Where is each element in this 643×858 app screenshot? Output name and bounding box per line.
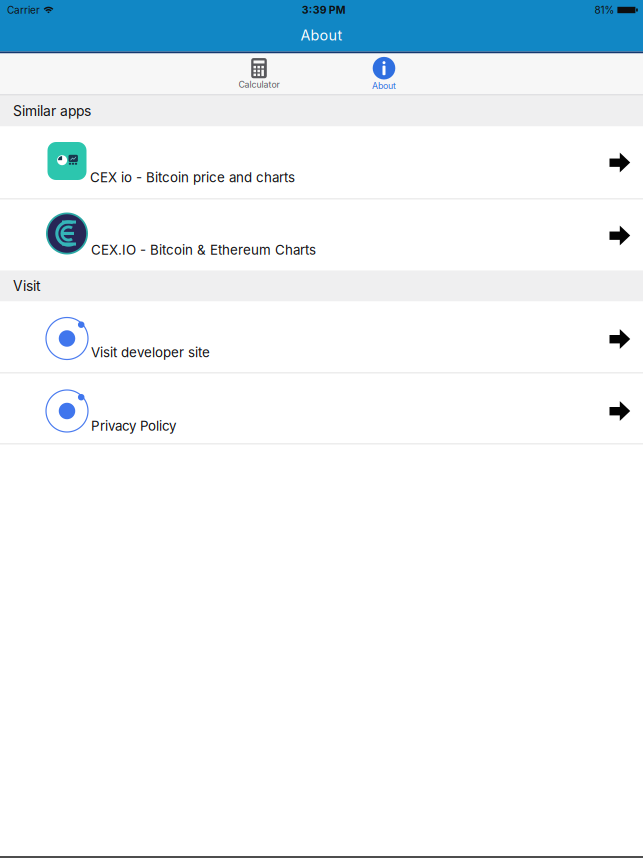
button[interactable]: About xyxy=(321,54,446,94)
staticText: About xyxy=(372,80,396,91)
staticText: Visit developer site xyxy=(91,344,210,360)
staticText: Carrier xyxy=(7,4,40,16)
staticText: About xyxy=(300,26,342,44)
staticText: Visit xyxy=(13,278,41,294)
button[interactable]: Calculator xyxy=(196,54,321,94)
staticText: CEX io - Bitcoin price and charts xyxy=(90,169,295,185)
button[interactable]: Privacy Policy xyxy=(0,373,643,443)
button[interactable]: CEX io - Bitcoin price and charts xyxy=(0,126,643,198)
staticText: 81% xyxy=(594,4,614,16)
staticText: Privacy Policy xyxy=(91,418,176,434)
staticText: Calculator xyxy=(238,79,279,90)
button[interactable]: CEX.IO - Bitcoin & Ethereum Charts xyxy=(0,199,643,270)
button[interactable]: Visit developer site xyxy=(0,301,643,372)
staticText: Similar apps xyxy=(13,103,91,119)
staticText: 3:39 PM xyxy=(302,4,346,16)
staticText: CEX.IO - Bitcoin & Ethereum Charts xyxy=(91,242,316,258)
